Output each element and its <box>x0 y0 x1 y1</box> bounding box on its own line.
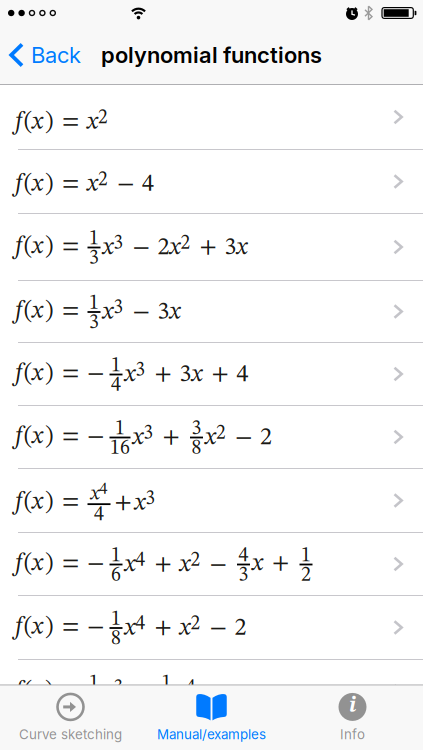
staticText: 8 <box>111 629 121 649</box>
staticText: + x3 <box>112 490 155 515</box>
staticText: x3 − <box>102 679 157 704</box>
staticText: 2 <box>301 565 311 585</box>
staticText: x3 − 2x2 + 3x <box>102 234 247 260</box>
staticText: 3 <box>89 248 99 268</box>
staticText: 3 <box>191 419 201 439</box>
staticText: 1 <box>161 673 171 693</box>
staticText: x3 − 3x <box>102 299 180 324</box>
staticText: f (x ) = − <box>15 425 107 449</box>
staticText: 1 <box>301 546 311 566</box>
staticText: f (x ) = <box>15 235 85 259</box>
staticText: x4 <box>175 679 196 704</box>
staticText: f (x ) = x2 <box>15 109 108 134</box>
staticText: 16 <box>110 438 130 458</box>
staticText: Manual/examples <box>157 726 266 742</box>
staticText: f (x ) = <box>15 491 85 514</box>
staticText: 8 <box>191 438 201 458</box>
staticText: x4 + x2 − <box>124 551 234 577</box>
staticText: f (x ) = − <box>15 616 107 639</box>
staticText: 4 <box>94 505 104 525</box>
staticText: 1 <box>89 229 99 249</box>
staticText: f (x ) = − <box>15 362 107 386</box>
staticText: f (x ) = x2 − 4 <box>15 171 154 196</box>
staticText: 1 <box>89 293 99 313</box>
staticText: x + <box>252 552 297 576</box>
staticText: 6 <box>111 565 121 585</box>
staticText: i <box>349 695 356 717</box>
staticText: f (x ) = <box>15 300 85 323</box>
staticText: 1 <box>115 419 125 439</box>
staticText: x2 − 2 <box>205 424 272 450</box>
staticText: 1 <box>111 546 121 566</box>
staticText: f (x ) = <box>15 680 85 703</box>
staticText: Info <box>340 726 365 742</box>
staticText: 3 <box>89 313 99 333</box>
staticText: 4 <box>111 375 121 395</box>
staticText: 4 <box>238 546 248 566</box>
staticText: 3 <box>238 565 248 585</box>
staticText: Curve sketching <box>19 726 122 742</box>
staticText: polynomial functions <box>101 42 322 68</box>
staticText: x4 <box>90 482 107 504</box>
staticText: x4 + x2 − 2 <box>124 615 246 640</box>
staticText: 1 <box>89 673 99 693</box>
staticText: f (x ) = − <box>15 552 107 576</box>
staticText: Back <box>31 42 81 68</box>
staticText: x3 + 3x + 4 <box>124 361 248 387</box>
staticText: 1 <box>111 609 121 629</box>
staticText: x3 + <box>132 424 187 450</box>
staticText: 1 <box>111 356 121 376</box>
